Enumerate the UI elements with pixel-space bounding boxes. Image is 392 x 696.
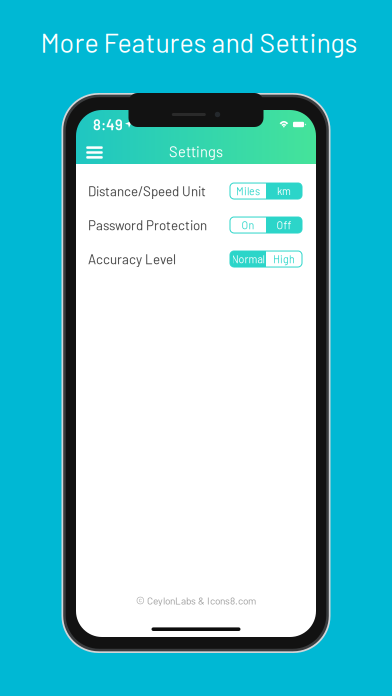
- button[interactable]: Distance/Speed Unit: [76, 174, 316, 208]
- button[interactable]: km: [266, 183, 302, 199]
- button[interactable]: Menu: [76, 138, 113, 166]
- staticText: Normal: [231, 253, 264, 265]
- button[interactable]: Off: [266, 217, 302, 233]
- button[interactable]: Miles: [230, 183, 266, 199]
- staticText: Accuracy Level: [88, 251, 176, 267]
- staticText: Distance/Speed Unit: [88, 183, 206, 199]
- staticText: km: [277, 185, 291, 197]
- staticText: © CeylonLabs & Icons8.com: [136, 594, 256, 606]
- staticText: Settings: [169, 143, 223, 160]
- button[interactable]: Accuracy Level: [76, 242, 316, 276]
- staticText: On: [241, 219, 254, 231]
- button[interactable]: Normal: [230, 251, 266, 267]
- button[interactable]: High: [266, 251, 302, 267]
- staticText: Off: [276, 219, 291, 231]
- button[interactable]: Password Protection: [76, 208, 316, 242]
- staticText: Password Protection: [88, 217, 207, 233]
- staticText: Miles: [236, 185, 260, 197]
- button[interactable]: On: [230, 217, 266, 233]
- staticText: 8:49: [93, 116, 123, 133]
- staticText: More Features and Settings: [40, 26, 357, 58]
- staticText: High: [273, 253, 295, 265]
